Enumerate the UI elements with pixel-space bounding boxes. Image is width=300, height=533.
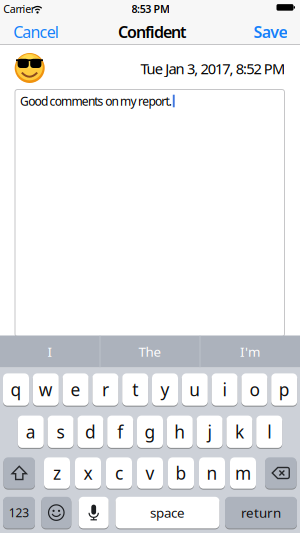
button[interactable]: t: [122, 373, 148, 406]
staticText: g: [144, 420, 155, 443]
button[interactable]: w: [33, 373, 59, 406]
button[interactable]: [41, 497, 71, 528]
staticText: 8:53 PM: [131, 2, 170, 16]
staticText: k: [235, 420, 244, 443]
staticText: p: [279, 378, 290, 401]
staticText: a: [26, 420, 36, 443]
staticText: q: [10, 378, 21, 401]
staticText: z: [53, 461, 61, 484]
button[interactable]: f: [107, 416, 133, 448]
staticText: b: [175, 461, 186, 484]
button[interactable]: 123: [3, 497, 35, 528]
staticText: n: [206, 461, 217, 484]
staticText: Save: [254, 21, 287, 42]
staticText: v: [145, 461, 154, 484]
button[interactable]: return: [225, 497, 297, 528]
staticText: r: [102, 378, 109, 401]
button[interactable]: Cancel: [13, 19, 59, 44]
staticText: l: [267, 420, 271, 443]
staticText: d: [85, 420, 96, 443]
staticText: o: [249, 378, 259, 401]
staticText: j: [208, 420, 212, 443]
button[interactable]: I'm: [200, 335, 299, 367]
button[interactable]: space: [115, 497, 219, 528]
button[interactable]: j: [197, 416, 223, 448]
button[interactable]: h: [167, 416, 193, 448]
staticText: i: [223, 378, 227, 401]
button[interactable]: Save: [251, 19, 289, 44]
staticText: return: [241, 504, 281, 521]
staticText: m: [235, 461, 251, 484]
button[interactable]: l: [256, 416, 282, 448]
staticText: Carrier: [3, 2, 35, 16]
button[interactable]: The: [100, 335, 199, 367]
button[interactable]: g: [137, 416, 163, 448]
button[interactable]: x: [75, 457, 101, 489]
button[interactable]: y: [152, 373, 178, 406]
button[interactable]: [265, 457, 296, 489]
staticText: f: [117, 420, 123, 443]
button[interactable]: r: [92, 373, 118, 406]
button[interactable]: a: [18, 416, 44, 448]
staticText: Confident: [118, 21, 186, 42]
staticText: h: [174, 420, 185, 443]
button[interactable]: n: [199, 457, 225, 489]
button[interactable]: [3, 457, 35, 489]
button[interactable]: v: [137, 457, 163, 489]
staticText: The: [138, 343, 161, 360]
button[interactable]: s: [48, 416, 74, 448]
button[interactable]: o: [241, 373, 267, 406]
button[interactable]: d: [77, 416, 103, 448]
button[interactable]: c: [106, 457, 132, 489]
staticText: space: [150, 504, 185, 521]
staticText: c: [115, 461, 123, 484]
button[interactable]: u: [182, 373, 208, 406]
button[interactable]: k: [226, 416, 252, 448]
staticText: I'm: [240, 343, 260, 360]
staticText: e: [71, 378, 81, 401]
button[interactable]: z: [44, 457, 70, 489]
staticText: I: [47, 343, 52, 360]
staticText: Tue Jan 3, 2017, 8:52 PM: [140, 59, 285, 78]
button[interactable]: [79, 497, 109, 528]
staticText: Cancel: [13, 21, 59, 42]
button[interactable]: I: [0, 335, 99, 367]
button[interactable]: i: [212, 373, 238, 406]
staticText: y: [160, 378, 169, 401]
staticText: 123: [9, 505, 29, 520]
staticText: t: [132, 378, 138, 401]
button[interactable]: q: [3, 373, 29, 406]
button[interactable]: m: [230, 457, 256, 489]
button[interactable]: e: [63, 373, 89, 406]
button[interactable]: b: [168, 457, 194, 489]
staticText: x: [83, 461, 92, 484]
staticText: Good comments on my report.: [20, 93, 172, 109]
staticText: w: [39, 378, 53, 401]
staticText: u: [189, 378, 200, 401]
button[interactable]: p: [271, 373, 297, 406]
staticText: s: [57, 420, 65, 443]
